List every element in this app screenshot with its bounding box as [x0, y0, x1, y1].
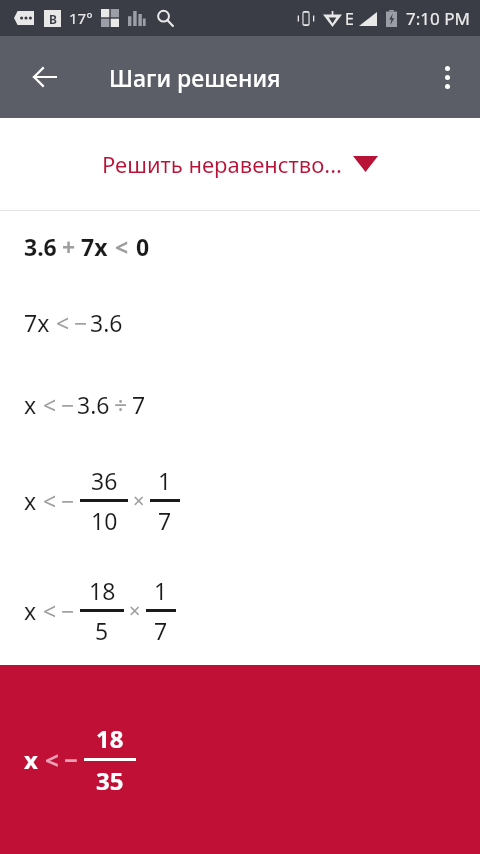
- staticText: ÷: [114, 389, 128, 420]
- staticText: Шаги решения: [109, 62, 281, 93]
- staticText: −: [74, 307, 88, 338]
- staticText: x: [24, 595, 37, 626]
- staticText: 7: [158, 505, 172, 536]
- staticText: 35: [96, 764, 124, 797]
- staticText: x: [24, 485, 37, 516]
- button[interactable]: More options: [423, 53, 471, 101]
- staticText: <: [43, 595, 57, 626]
- staticText: 3.6: [90, 307, 123, 338]
- staticText: 1: [158, 465, 172, 496]
- button[interactable]: x: [0, 363, 480, 445]
- button[interactable]: x: [0, 665, 480, 854]
- staticText: E: [345, 8, 354, 30]
- staticText: 36: [91, 465, 118, 496]
- staticText: 3.6: [77, 389, 110, 420]
- button[interactable]: x: [0, 445, 480, 555]
- button[interactable]: 7x: [0, 281, 480, 363]
- staticText: 7: [132, 389, 146, 420]
- staticText: −: [64, 743, 78, 776]
- staticText: 7x: [24, 307, 50, 338]
- staticText: ×: [133, 487, 145, 514]
- staticText: 7:10 PM: [406, 7, 470, 30]
- staticText: 0: [136, 231, 150, 262]
- staticText: −: [61, 389, 75, 420]
- staticText: −: [61, 595, 75, 626]
- staticText: +: [62, 231, 76, 262]
- staticText: <: [56, 307, 70, 338]
- button[interactable]: x: [0, 555, 480, 665]
- staticText: <: [115, 231, 129, 262]
- staticText: ×: [129, 597, 141, 624]
- staticText: <: [43, 389, 57, 420]
- button[interactable]: 3.6: [0, 211, 480, 281]
- staticText: 5: [95, 615, 109, 646]
- staticText: 17°: [69, 8, 93, 28]
- staticText: −: [61, 485, 75, 516]
- staticText: 7x: [81, 231, 108, 262]
- staticText: x: [24, 743, 38, 776]
- staticText: <: [43, 485, 57, 516]
- staticText: 3.6: [24, 231, 57, 262]
- staticText: x: [24, 389, 37, 420]
- button[interactable]: Back: [21, 53, 69, 101]
- staticText: 18: [96, 722, 124, 755]
- staticText: Решить неравенство...: [102, 149, 342, 179]
- staticText: 1: [154, 575, 168, 606]
- staticText: 10: [91, 505, 118, 536]
- staticText: 7: [154, 615, 168, 646]
- button[interactable]: Решить неравенство...: [0, 118, 480, 210]
- staticText: 18: [89, 575, 116, 606]
- staticText: <: [45, 743, 59, 776]
- staticText: B: [49, 11, 57, 27]
